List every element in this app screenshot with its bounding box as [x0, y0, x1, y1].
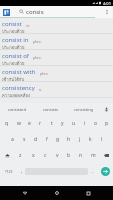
staticText: o — [94, 120, 98, 127]
staticText: t — [51, 120, 53, 127]
button[interactable]: y — [57, 115, 68, 131]
button[interactable]: u — [68, 115, 79, 131]
button[interactable]: consists — [34, 103, 67, 115]
button[interactable]: consist in — [0, 34, 113, 49]
button[interactable]: consisting — [67, 103, 100, 115]
button[interactable]: t — [46, 115, 57, 131]
staticText: a — [11, 136, 14, 143]
button[interactable]: b — [63, 147, 75, 163]
button[interactable]: z — [14, 147, 27, 163]
staticText: phrv. — [40, 71, 49, 76]
staticText: consisting — [74, 107, 94, 112]
button[interactable]: p — [101, 115, 112, 131]
button[interactable]: r — [35, 115, 46, 131]
button[interactable]: f — [41, 131, 52, 147]
staticText: ?123 — [5, 169, 13, 174]
button[interactable]: s — [18, 131, 30, 147]
staticText: d — [34, 136, 38, 143]
button[interactable]: w — [13, 115, 24, 131]
staticText: phrv. — [33, 39, 42, 44]
button[interactable]: i — [79, 115, 90, 131]
staticText: consist — [2, 20, 22, 28]
staticText: consist in — [2, 36, 29, 44]
button[interactable]: Dictionary — [2, 8, 10, 16]
staticText: r — [39, 120, 42, 127]
staticText: c — [44, 152, 47, 159]
button[interactable]: h — [63, 131, 74, 147]
staticText: w — [17, 120, 21, 127]
staticText: consists — [43, 107, 59, 112]
staticText: consistency — [2, 84, 35, 92]
staticText: n — [79, 152, 83, 159]
staticText: u — [72, 120, 76, 127]
staticText: g — [56, 136, 60, 143]
button[interactable]: e — [24, 115, 35, 131]
staticText: y — [61, 120, 64, 127]
staticText: q — [5, 120, 9, 127]
button[interactable]: g — [52, 131, 63, 147]
staticText: f — [46, 136, 48, 143]
staticText: l — [101, 136, 103, 143]
staticText: consis — [26, 8, 44, 16]
button[interactable]: n — [75, 147, 87, 163]
staticText: phrv. — [33, 55, 42, 60]
button[interactable]: consisted — [0, 103, 34, 115]
button[interactable]: consist with — [0, 66, 113, 81]
button[interactable]: consistency — [0, 82, 113, 97]
staticText: m — [91, 152, 96, 159]
staticText: consisted — [8, 107, 26, 112]
button[interactable]: Voice input — [100, 103, 113, 115]
button[interactable]: Backspace — [99, 147, 113, 163]
staticText: e — [28, 120, 31, 127]
staticText: n. — [39, 87, 43, 92]
staticText: k — [89, 136, 92, 143]
staticText: s — [23, 136, 26, 143]
button[interactable]: , — [18, 163, 25, 179]
staticText: vi. — [26, 23, 30, 28]
button[interactable]: k — [85, 131, 96, 147]
button[interactable]: a — [6, 131, 18, 147]
staticText: x — [32, 152, 35, 159]
staticText: p — [105, 120, 109, 127]
button[interactable]: Shift — [0, 147, 14, 163]
staticText: 4:01 — [103, 1, 111, 6]
button[interactable]: consist of — [0, 50, 113, 65]
staticText: . — [92, 168, 94, 175]
staticText: , — [21, 168, 23, 175]
staticText: consist of — [2, 52, 29, 60]
button[interactable]: d — [30, 131, 41, 147]
staticText: เข้ากันได้กับ — [2, 76, 25, 81]
button[interactable]: j — [74, 131, 85, 147]
button[interactable]: Home — [50, 186, 64, 200]
button[interactable]: q — [1, 115, 13, 131]
button[interactable]: Back — [18, 186, 32, 200]
staticText: h — [67, 136, 71, 143]
button[interactable]: v — [51, 147, 63, 163]
button[interactable]: Recent apps — [81, 186, 95, 200]
button[interactable]: Search — [97, 163, 113, 179]
button[interactable]: o — [90, 115, 101, 131]
button[interactable]: m — [87, 147, 99, 163]
staticText: i — [84, 120, 86, 127]
button[interactable]: More options — [102, 7, 112, 17]
staticText: v — [56, 152, 59, 159]
button[interactable]: x — [27, 147, 39, 163]
button[interactable]: c — [39, 147, 51, 163]
button[interactable]: ?123 — [0, 163, 18, 179]
staticText: j — [79, 136, 81, 143]
staticText: ความสอดคล้อง — [2, 92, 30, 97]
staticText: b — [67, 152, 71, 159]
button[interactable]: consist — [0, 18, 113, 33]
staticText: consist with — [2, 68, 36, 76]
staticText: ประกอบด้วย — [2, 28, 25, 33]
staticText: ประกอบด้วย — [2, 60, 25, 65]
staticText: z — [19, 152, 22, 159]
button[interactable]: l — [96, 131, 107, 147]
button[interactable]: . — [88, 163, 97, 179]
staticText: ประกอบด้วย — [2, 44, 25, 49]
